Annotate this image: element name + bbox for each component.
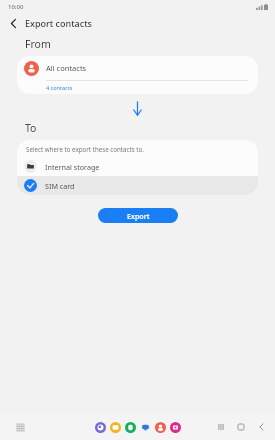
- button[interactable]: App: [140, 422, 151, 433]
- button[interactable]: Navigate up: [4, 14, 22, 32]
- button[interactable]: App: [110, 422, 121, 433]
- button[interactable]: App: [170, 422, 181, 433]
- staticText: SIM card: [45, 181, 75, 191]
- button[interactable]: SIM card: [17, 176, 258, 195]
- button[interactable]: Home: [235, 421, 247, 433]
- button[interactable]: Apps: [13, 420, 27, 434]
- staticText: To: [25, 121, 37, 135]
- staticText: 4 contacts: [46, 84, 73, 91]
- button[interactable]: Back: [255, 421, 267, 433]
- staticText: 10:00: [8, 3, 24, 11]
- button[interactable]: All contacts: [17, 56, 258, 94]
- button[interactable]: App: [125, 422, 136, 433]
- staticText: Export: [127, 211, 150, 221]
- button[interactable]: Internal storage: [17, 157, 258, 176]
- button[interactable]: Export: [98, 208, 178, 223]
- staticText: Internal storage: [45, 162, 100, 172]
- button[interactable]: App: [95, 422, 106, 433]
- staticText: Select where to export these contacts to…: [26, 145, 144, 153]
- button[interactable]: App: [155, 422, 166, 433]
- staticText: All contacts: [46, 63, 87, 73]
- staticText: From: [25, 37, 51, 51]
- button[interactable]: Recent apps: [215, 421, 227, 433]
- staticText: Export contacts: [25, 17, 92, 29]
